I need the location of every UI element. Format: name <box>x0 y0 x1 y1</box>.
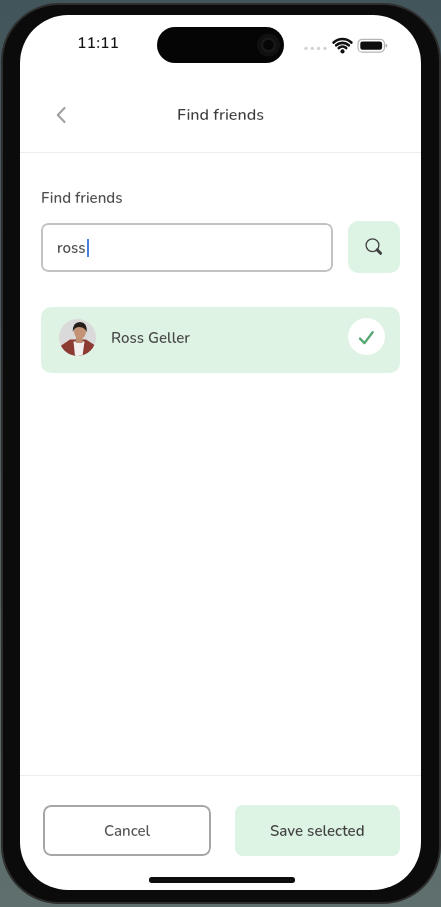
staticText: ross <box>57 238 86 258</box>
staticText: Find friends <box>41 188 123 208</box>
staticText: Save selected <box>270 821 365 841</box>
button[interactable]: ross <box>41 223 333 272</box>
staticText: Find friends <box>177 104 264 126</box>
staticText: Cancel <box>104 821 151 841</box>
button[interactable]: Cancel <box>43 805 211 856</box>
staticText: 11:11 <box>77 32 120 54</box>
button[interactable] <box>348 221 400 273</box>
button[interactable]: Save selected <box>235 805 400 856</box>
staticText: Ross Geller <box>111 328 191 348</box>
button[interactable] <box>40 97 88 133</box>
button[interactable]: Ross Geller <box>41 307 400 373</box>
